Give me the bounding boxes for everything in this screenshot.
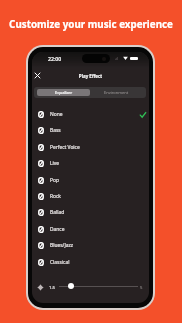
staticText: Classical	[50, 259, 70, 266]
staticText: Customize your music experience	[0, 18, 182, 31]
staticText: Pop	[50, 177, 59, 184]
staticText: Blues/Jazz	[50, 242, 74, 249]
button[interactable]: Pop	[32, 172, 149, 189]
button[interactable]: Ballad	[32, 204, 149, 221]
staticText: 22:00	[48, 55, 62, 62]
staticText: None	[50, 111, 63, 118]
button[interactable]: Blues/Jazz	[32, 237, 149, 254]
button[interactable]: Bass	[32, 122, 149, 139]
staticText: Bass	[50, 127, 61, 134]
staticText: 1.5	[49, 284, 56, 290]
staticText: Play Effect	[32, 73, 149, 79]
button[interactable]: Dance	[32, 221, 149, 238]
staticText: Dance	[50, 226, 65, 233]
staticText: Rock	[50, 193, 61, 200]
button[interactable]: Intensity	[68, 283, 74, 289]
staticText: Ballad	[50, 209, 65, 216]
staticText: Perfect Voice	[50, 144, 80, 151]
staticText: Live	[50, 160, 60, 167]
button[interactable]: Close	[32, 70, 43, 81]
button[interactable]: Live	[32, 155, 149, 172]
staticText: Environment	[104, 90, 129, 95]
button[interactable]: None	[32, 106, 149, 123]
staticText: 5	[140, 284, 143, 290]
button[interactable]: Equalizer	[37, 89, 90, 96]
staticText: Equalizer	[55, 90, 73, 95]
button[interactable]: Environment	[90, 89, 143, 96]
button[interactable]: Rock	[32, 188, 149, 205]
button[interactable]: Perfect Voice	[32, 139, 149, 156]
button[interactable]: Classical	[32, 254, 149, 271]
